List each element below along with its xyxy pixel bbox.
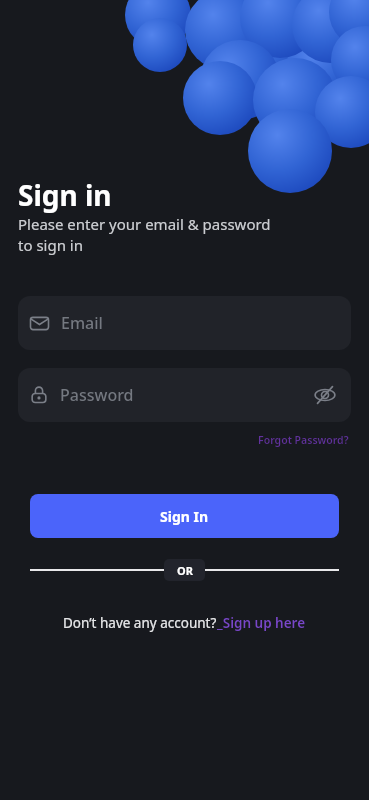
staticText: OR <box>177 563 193 578</box>
staticText: Email <box>61 312 103 334</box>
staticText: Sign in <box>18 176 112 214</box>
button[interactable]: Sign In <box>30 494 339 538</box>
staticText: Don’t have any account? <box>63 614 217 632</box>
button[interactable]: Email <box>18 296 351 350</box>
button[interactable]: _Sign up here <box>217 614 306 632</box>
button[interactable]: Password <box>18 368 351 422</box>
button[interactable]: Forgot Password? <box>258 433 349 447</box>
staticText: Sign In <box>160 507 209 526</box>
staticText: Please enter your email & password to si… <box>18 214 271 256</box>
staticText: Password <box>60 384 134 406</box>
button[interactable] <box>310 380 340 410</box>
